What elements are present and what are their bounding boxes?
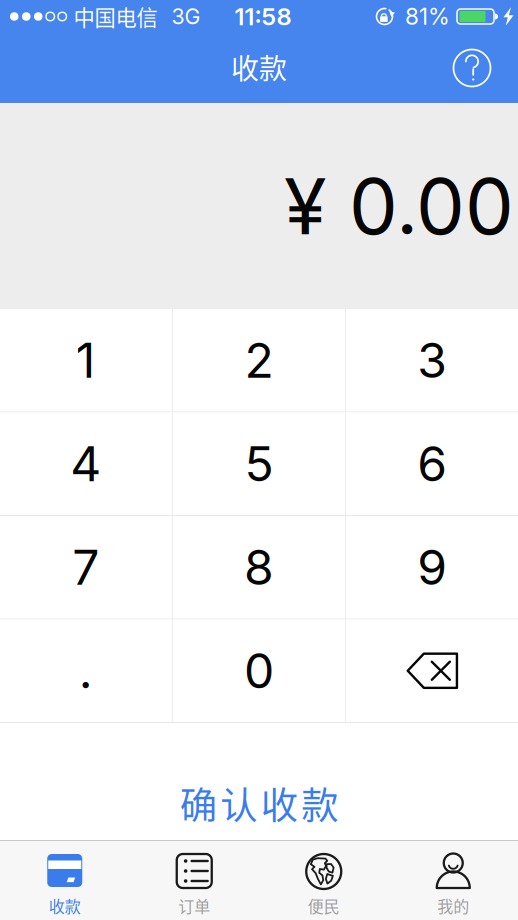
button[interactable]: 我的: [388, 840, 518, 920]
button[interactable]: 收款: [0, 840, 129, 920]
button[interactable]: .: [0, 619, 172, 722]
staticText: 确认收款: [180, 776, 338, 830]
staticText: 订单: [178, 894, 210, 917]
staticText: 我的: [437, 894, 469, 917]
button[interactable]: 0: [173, 619, 345, 722]
staticText: 5: [244, 435, 273, 493]
staticText: 9: [417, 538, 447, 596]
button[interactable]: 1: [0, 309, 172, 411]
button[interactable]: Help: [440, 38, 518, 98]
staticText: 中国电信: [73, 1, 157, 32]
staticText: 7: [72, 538, 99, 596]
staticText: 0: [244, 642, 274, 700]
button[interactable]: 9: [346, 516, 518, 618]
button[interactable]: 订单: [129, 840, 259, 920]
staticText: 便民: [308, 894, 340, 917]
staticText: 3: [417, 331, 447, 389]
button[interactable]: 8: [173, 516, 345, 618]
staticText: 81%: [405, 3, 450, 30]
button[interactable]: 3: [346, 309, 518, 411]
button[interactable]: Delete: [346, 619, 518, 722]
button[interactable]: 5: [173, 412, 345, 515]
staticText: 11:58: [234, 2, 291, 31]
button[interactable]: 4: [0, 412, 172, 515]
staticText: 8: [244, 538, 274, 596]
staticText: 1: [76, 331, 96, 389]
staticText: 4: [70, 435, 101, 493]
staticText: .: [79, 642, 93, 700]
button[interactable]: 便民: [259, 840, 388, 920]
staticText: 收款: [231, 47, 287, 87]
staticText: 3G: [171, 4, 200, 29]
staticText: ¥ 0.00: [284, 159, 514, 253]
button[interactable]: 7: [0, 516, 172, 618]
staticText: 收款: [49, 894, 81, 917]
button[interactable]: 6: [346, 412, 518, 515]
staticText: 6: [417, 435, 447, 493]
button[interactable]: 2: [173, 309, 345, 411]
button[interactable]: 确认收款: [0, 723, 518, 840]
staticText: 2: [244, 331, 273, 389]
